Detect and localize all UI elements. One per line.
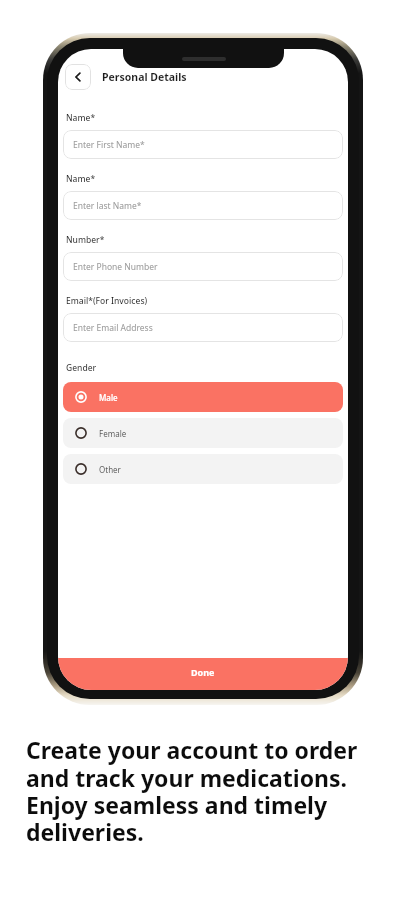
staticText: Enter last Name*: [73, 200, 142, 212]
button[interactable]: Male: [63, 382, 343, 412]
staticText: Gender: [66, 362, 97, 374]
staticText: Other: [99, 464, 121, 475]
staticText: Enter Phone Number: [73, 261, 158, 273]
staticText: Enter Email Address: [73, 322, 153, 334]
button[interactable]: Back: [65, 64, 91, 90]
staticText: Email*(For Invoices): [66, 295, 148, 307]
button[interactable]: Enter First Name*: [63, 130, 343, 159]
button[interactable]: Other: [63, 454, 343, 484]
button[interactable]: Enter Phone Number: [63, 252, 343, 281]
button[interactable]: Done: [58, 658, 348, 690]
staticText: Female: [99, 428, 127, 439]
staticText: Enter First Name*: [73, 139, 145, 151]
staticText: Personal Details: [102, 70, 187, 84]
staticText: Name*: [66, 173, 96, 185]
button[interactable]: Enter last Name*: [63, 191, 343, 220]
button[interactable]: Female: [63, 418, 343, 448]
staticText: Name*: [66, 112, 96, 124]
staticText: Male: [99, 392, 118, 403]
button[interactable]: Enter Email Address: [63, 313, 343, 342]
staticText: Create your account to order and track y…: [26, 734, 400, 847]
staticText: Number*: [66, 234, 105, 246]
staticText: Done: [191, 666, 215, 678]
